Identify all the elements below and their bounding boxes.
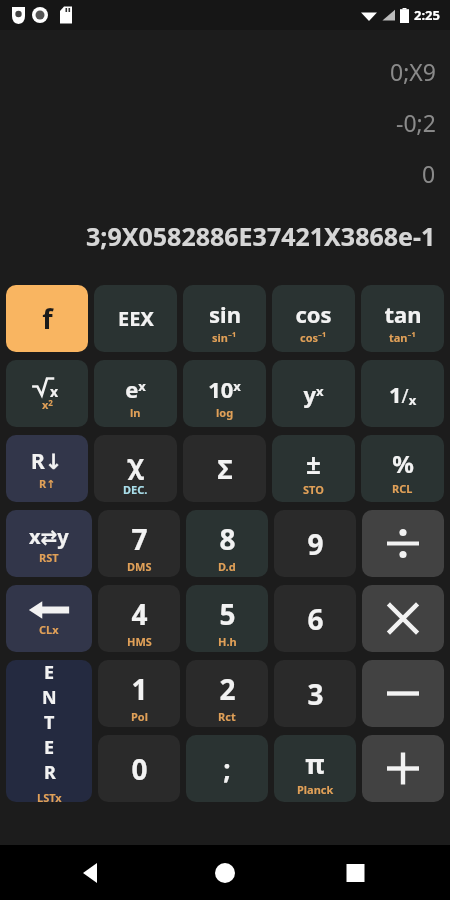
staticText: yx xyxy=(303,379,324,409)
button[interactable]: swap x and y xyxy=(6,510,92,577)
staticText: 10x xyxy=(208,374,241,404)
staticText: 1 xyxy=(131,670,148,708)
staticText: cos xyxy=(295,299,332,329)
staticText: H.h xyxy=(218,634,237,649)
button[interactable]: percent recall xyxy=(361,435,444,502)
staticText: E xyxy=(44,735,55,760)
button[interactable]: plus minus store xyxy=(272,435,355,502)
staticText: tan⁻¹ xyxy=(389,330,416,345)
staticText: 0;X9 xyxy=(390,56,436,87)
staticText: DEC. xyxy=(123,482,148,497)
staticText: sin xyxy=(209,299,241,329)
button[interactable]: Enter, last x xyxy=(6,660,92,802)
staticText: ; xyxy=(223,751,231,786)
staticText: cos⁻¹ xyxy=(300,330,327,345)
staticText: 6 xyxy=(307,600,324,638)
button[interactable]: 7 xyxy=(98,510,180,577)
button[interactable]: roll down xyxy=(6,435,88,502)
staticText: x⇄y xyxy=(29,523,69,550)
staticText: Planck xyxy=(297,782,334,797)
staticText: RCL xyxy=(392,481,413,496)
staticText: Rct xyxy=(218,709,236,724)
button[interactable]: y to the x xyxy=(272,360,355,427)
staticText: Pol xyxy=(131,709,148,724)
button[interactable]: sine xyxy=(183,285,266,352)
button[interactable]: 1 xyxy=(98,660,180,727)
button[interactable]: square root xyxy=(6,360,88,427)
button[interactable]: 6 xyxy=(274,585,356,652)
button[interactable]: pi xyxy=(274,735,356,802)
staticText: f xyxy=(42,300,53,337)
staticText: 3 xyxy=(307,675,324,713)
staticText: Σ xyxy=(217,451,233,486)
staticText: 9 xyxy=(307,525,324,563)
staticText: RST xyxy=(39,550,59,565)
staticText: N xyxy=(42,685,57,710)
button[interactable]: 3 xyxy=(274,660,356,727)
staticText: 7 xyxy=(131,520,148,558)
staticText: 2 xyxy=(219,670,236,708)
button[interactable]: ten to the x xyxy=(183,360,266,427)
staticText: log xyxy=(216,405,234,420)
button[interactable]: chi decimal xyxy=(94,435,177,502)
button[interactable]: Minus xyxy=(362,660,444,727)
staticText: T xyxy=(44,710,55,735)
button[interactable]: 4 xyxy=(98,585,180,652)
button[interactable]: sigma xyxy=(183,435,266,502)
button[interactable]: Backspace, clear x xyxy=(6,585,92,652)
button[interactable]: 5 xyxy=(186,585,268,652)
button[interactable]: Plus xyxy=(362,735,444,802)
staticText: 0 xyxy=(422,158,436,189)
button[interactable]: 8 xyxy=(186,510,268,577)
staticText: DMS xyxy=(127,559,152,574)
button[interactable]: cosine xyxy=(272,285,355,352)
button[interactable]: f shift xyxy=(6,285,88,352)
staticText: EEX xyxy=(118,305,154,332)
staticText: ± xyxy=(306,446,321,481)
staticText: tan xyxy=(384,299,422,329)
button[interactable]: decimal separator xyxy=(186,735,268,802)
staticText: x xyxy=(50,382,59,401)
staticText: 0 xyxy=(131,750,148,788)
button[interactable]: e to the x xyxy=(94,360,177,427)
button[interactable]: EEX xyxy=(94,285,177,352)
staticText: STO xyxy=(303,482,324,497)
staticText: D.d xyxy=(218,559,236,574)
staticText: -0;2 xyxy=(396,107,436,138)
button[interactable]: tangent xyxy=(361,285,444,352)
staticText: R↓ xyxy=(31,447,63,476)
staticText: sin⁻¹ xyxy=(212,330,237,345)
staticText: R xyxy=(44,760,56,785)
staticText: CLx xyxy=(39,622,59,637)
button[interactable]: Multiply xyxy=(362,585,444,652)
staticText: χ xyxy=(127,446,144,481)
button[interactable]: 2 xyxy=(186,660,268,727)
staticText: 4 xyxy=(131,595,148,633)
button[interactable]: 9 xyxy=(274,510,356,577)
button[interactable]: 0 xyxy=(98,735,180,802)
staticText: x2 xyxy=(42,397,53,412)
staticText: ex xyxy=(125,374,146,404)
staticText: π xyxy=(305,746,325,781)
button[interactable]: reciprocal xyxy=(361,360,444,427)
button[interactable]: Divide xyxy=(362,510,444,577)
staticText: HMS xyxy=(127,634,152,649)
staticText: 2:25 xyxy=(414,6,440,24)
staticText: 3;9X0582886E37421X3868e-1 xyxy=(86,219,436,253)
staticText: R↑ xyxy=(39,476,56,491)
staticText: ln xyxy=(130,405,141,420)
staticText: LSTx xyxy=(37,790,62,802)
staticText: 1/x xyxy=(389,379,417,409)
staticText: 8 xyxy=(219,520,236,558)
staticText: E xyxy=(44,660,55,685)
staticText: 5 xyxy=(219,595,236,633)
staticText: % xyxy=(392,447,414,480)
